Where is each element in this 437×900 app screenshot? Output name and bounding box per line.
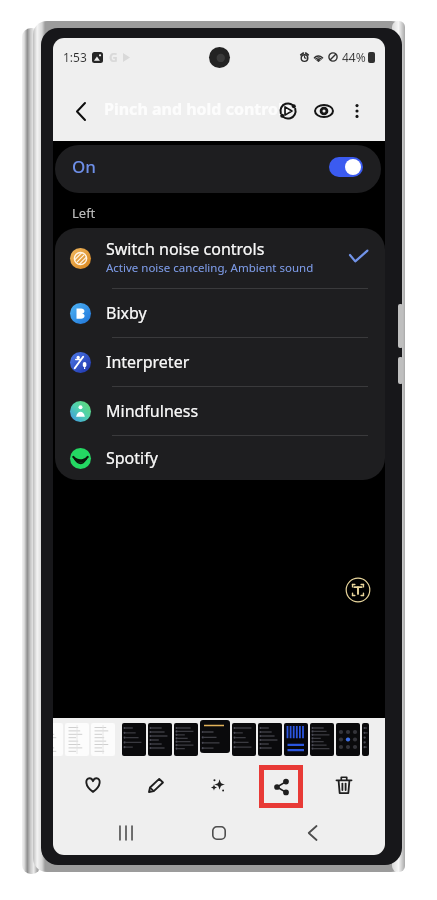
button[interactable]: Preview bbox=[311, 98, 337, 124]
button[interactable] bbox=[65, 723, 89, 756]
button[interactable] bbox=[284, 723, 308, 756]
button[interactable]: More options bbox=[345, 98, 369, 122]
staticText: Left bbox=[72, 204, 96, 222]
button[interactable] bbox=[200, 720, 230, 753]
button[interactable]: Navigate up bbox=[67, 96, 95, 124]
button[interactable] bbox=[53, 723, 63, 756]
staticText: Interpreter bbox=[106, 351, 190, 373]
button[interactable] bbox=[91, 723, 115, 756]
button[interactable]: Draw bbox=[135, 764, 177, 806]
button[interactable]: Magic bbox=[197, 764, 239, 806]
button[interactable]: Share bbox=[259, 765, 303, 808]
button[interactable] bbox=[336, 723, 360, 756]
staticText: Mindfulness bbox=[106, 400, 199, 422]
button[interactable]: On bbox=[55, 145, 381, 193]
button[interactable]: Bixby bbox=[55, 289, 385, 337]
button[interactable]: Mindfulness bbox=[55, 387, 385, 435]
staticText: Bixby bbox=[106, 302, 147, 324]
staticText: Active noise canceling, Ambient sound bbox=[106, 260, 314, 276]
button[interactable]: Interpreter bbox=[55, 338, 385, 386]
button[interactable]: Favorite bbox=[72, 764, 114, 806]
button[interactable] bbox=[310, 723, 334, 756]
button[interactable]: Home bbox=[202, 816, 236, 850]
staticText: On bbox=[72, 155, 96, 178]
staticText: Pinch and hold controls bbox=[104, 98, 291, 120]
button[interactable]: Recent apps bbox=[109, 816, 143, 850]
button[interactable]: Switch noise controls bbox=[55, 228, 385, 288]
button[interactable]: Screen recorder bbox=[275, 98, 301, 124]
button[interactable] bbox=[122, 723, 146, 756]
button[interactable] bbox=[174, 723, 198, 756]
staticText: 44% bbox=[342, 49, 366, 65]
staticText: G bbox=[109, 49, 118, 65]
button[interactable]: Back bbox=[295, 816, 329, 850]
button[interactable] bbox=[362, 723, 369, 756]
button[interactable]: Extract text bbox=[345, 577, 371, 603]
staticText: 1:53 bbox=[63, 49, 87, 65]
button[interactable] bbox=[258, 723, 282, 756]
staticText: Spotify bbox=[106, 447, 158, 469]
button[interactable]: Spotify bbox=[55, 436, 385, 480]
button[interactable] bbox=[232, 723, 256, 756]
staticText: Switch noise controls bbox=[106, 238, 265, 260]
button[interactable] bbox=[148, 723, 172, 756]
button[interactable]: Delete bbox=[323, 764, 365, 806]
